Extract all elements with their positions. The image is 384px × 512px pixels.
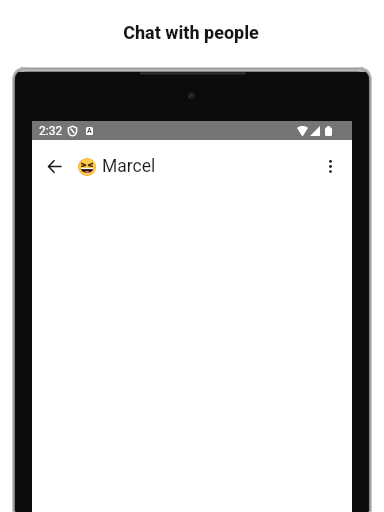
button[interactable]: Back (36, 148, 72, 184)
staticText: 2:32 (39, 124, 63, 138)
button[interactable]: More options (312, 148, 348, 184)
staticText: Chat with people (0, 22, 383, 43)
staticText: Marcel (102, 156, 156, 177)
staticText: A (87, 127, 92, 135)
